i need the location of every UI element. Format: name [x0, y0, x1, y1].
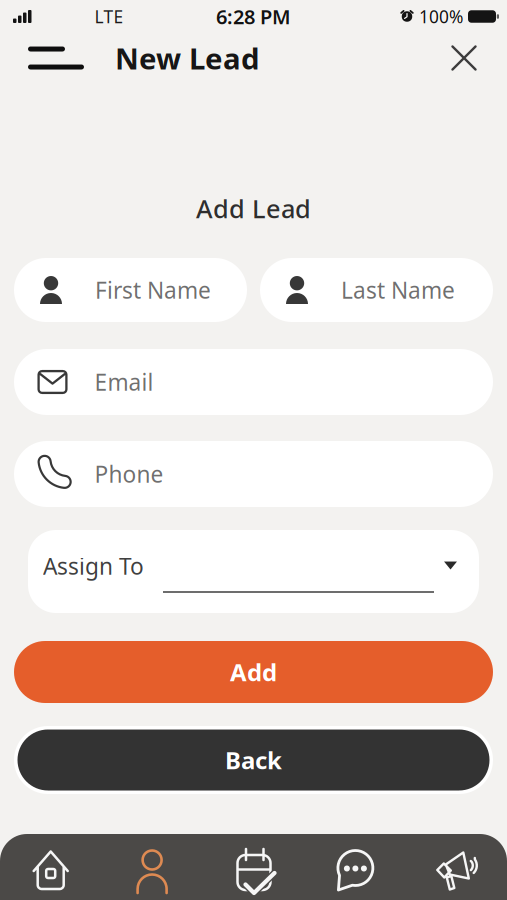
- staticText: Last Name: [341, 275, 455, 305]
- button[interactable]: Add: [14, 641, 493, 703]
- button[interactable]: Menu: [28, 46, 84, 69]
- button[interactable]: Home: [0, 834, 101, 900]
- staticText: Add: [230, 656, 277, 688]
- button[interactable]: Leads: [101, 834, 203, 900]
- button[interactable]: Back: [14, 726, 493, 794]
- button[interactable]: Last Name: [260, 258, 493, 322]
- staticText: First Name: [95, 275, 211, 305]
- staticText: 100%: [419, 5, 463, 28]
- staticText: New Lead: [115, 38, 260, 77]
- staticText: LTE: [94, 5, 123, 28]
- button[interactable]: Close: [451, 45, 477, 71]
- staticText: Add Lead: [196, 192, 311, 225]
- staticText: Back: [225, 744, 282, 776]
- button[interactable]: First Name: [14, 258, 247, 322]
- button[interactable]: Chat: [304, 834, 406, 900]
- button[interactable]: Calendar: [203, 834, 304, 900]
- button[interactable]: Assign To: [28, 530, 479, 613]
- staticText: 6:28 PM: [216, 3, 291, 30]
- button[interactable]: Phone: [14, 441, 493, 507]
- staticText: Assign To: [43, 551, 144, 581]
- staticText: Phone: [94, 459, 163, 489]
- staticText: Email: [94, 367, 153, 397]
- button[interactable]: Email: [14, 349, 493, 415]
- button[interactable]: Announcements: [406, 834, 507, 900]
